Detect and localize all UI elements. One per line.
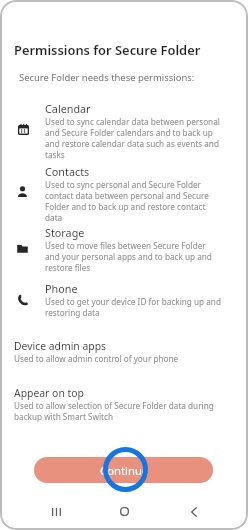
button[interactable]: Storage <box>0 225 248 273</box>
staticText: Used to allow admin control of your phon… <box>14 353 179 364</box>
staticText: Secure Folder needs these permissions: <box>19 71 195 84</box>
button[interactable]: Device admin apps <box>14 339 220 364</box>
staticText: Calendar <box>45 101 91 116</box>
staticText: Contacts <box>45 164 90 179</box>
staticText: Used to move files between Secure Folder… <box>45 240 221 273</box>
button[interactable]: Contacts <box>0 164 248 223</box>
button[interactable]: Back <box>180 498 208 525</box>
staticText: Used to allow selection of Secure Folder… <box>14 400 220 422</box>
staticText: Phone <box>45 281 78 296</box>
button[interactable]: Home <box>110 498 138 525</box>
staticText: Used to get your device ID for backing u… <box>45 296 221 318</box>
staticText: Continue <box>100 463 149 478</box>
button[interactable]: Phone <box>0 281 248 318</box>
staticText: Storage <box>45 225 85 240</box>
button[interactable]: Appear on top <box>14 386 220 422</box>
button[interactable]: Continue <box>34 457 213 483</box>
staticText: Permissions for Secure Folder <box>14 41 201 59</box>
button[interactable]: Calendar <box>0 101 248 160</box>
staticText: Appear on top <box>14 386 84 400</box>
staticText: Used to sync calendar data between perso… <box>45 116 221 160</box>
staticText: Device admin apps <box>14 339 107 353</box>
button[interactable]: Recent apps <box>42 498 70 525</box>
staticText: Used to sync personal and Secure Folder … <box>45 179 221 223</box>
